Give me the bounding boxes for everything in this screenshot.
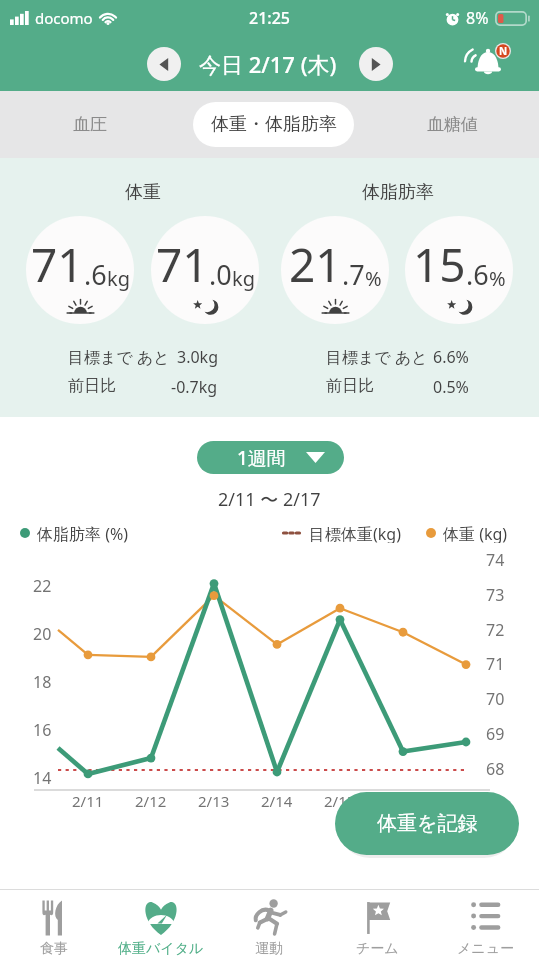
button[interactable]: 体重バイタル — [107, 890, 215, 960]
staticText: 21 — [289, 233, 342, 296]
staticText: 16 — [33, 719, 52, 741]
staticText: .6 — [466, 256, 489, 293]
button[interactable]: 21 — [281, 216, 389, 324]
button[interactable]: 食事 — [0, 890, 107, 960]
staticText: 8% — [466, 7, 489, 29]
staticText: 目標まで あと — [68, 346, 170, 368]
staticText: 2/16 — [387, 791, 419, 811]
staticText: 前日比 — [326, 376, 374, 396]
staticText: 体重 (kg) — [443, 523, 508, 543]
staticText: kg — [232, 265, 255, 292]
staticText: 0.5% — [433, 376, 469, 398]
button[interactable]: チーム — [323, 890, 431, 960]
button[interactable]: 71 — [151, 216, 259, 324]
button[interactable]: 運動 — [215, 890, 323, 960]
staticText: 6.6% — [433, 346, 469, 368]
staticText: 70 — [486, 688, 505, 710]
staticText: 目標まで あと — [326, 346, 428, 368]
staticText: .6 — [84, 256, 107, 293]
staticText: % — [489, 265, 506, 292]
staticText: 73 — [486, 584, 505, 606]
button[interactable]: Next day — [359, 47, 393, 81]
staticText: 血圧 — [73, 114, 107, 135]
staticText: .0 — [209, 256, 232, 293]
staticText: 15 — [413, 233, 466, 296]
staticText: 2/11 〜 2/17 — [218, 487, 321, 512]
button[interactable]: メニュー — [431, 890, 539, 960]
staticText: 運動 — [255, 940, 283, 958]
staticText: 2/17 — [450, 791, 482, 811]
staticText: チーム — [356, 940, 399, 958]
staticText: 21:25 — [249, 7, 290, 29]
button[interactable]: Notifications — [458, 32, 514, 80]
staticText: 体重・体脂肪率 — [211, 113, 337, 136]
staticText: docomo — [35, 8, 93, 28]
staticText: 2/11 — [72, 791, 104, 811]
staticText: 体重 — [125, 181, 161, 204]
staticText: 2/15 — [324, 791, 356, 811]
staticText: メニュー — [457, 940, 514, 958]
staticText: 14 — [33, 767, 52, 789]
staticText: 2/12 — [135, 791, 167, 811]
staticText: 1週間 — [237, 445, 286, 471]
staticText: 71 — [156, 233, 209, 296]
staticText: -0.7kg — [171, 376, 218, 398]
button[interactable]: 1週間 — [197, 441, 344, 474]
staticText: 3.0kg — [177, 346, 218, 368]
staticText: 体重バイタル — [118, 940, 204, 958]
button[interactable]: Previous day — [147, 47, 181, 81]
staticText: 71 — [31, 233, 84, 296]
button[interactable]: 15 — [405, 216, 513, 324]
staticText: 20 — [33, 623, 52, 645]
staticText: 目標体重(kg) — [309, 523, 401, 543]
staticText: 69 — [486, 723, 505, 745]
staticText: 今日 2/17 (木) — [199, 49, 337, 79]
staticText: 体脂肪率 — [362, 181, 434, 204]
staticText: 2/14 — [261, 791, 293, 811]
staticText: 72 — [486, 619, 505, 641]
staticText: % — [365, 265, 382, 292]
button[interactable]: 体重・体脂肪率 — [193, 102, 354, 147]
staticText: kg — [107, 265, 130, 292]
staticText: 22 — [33, 575, 52, 597]
staticText: 68 — [486, 758, 505, 780]
staticText: 前日比 — [68, 376, 116, 396]
staticText: 体脂肪率 (%) — [37, 523, 129, 543]
staticText: 71 — [486, 653, 505, 675]
button[interactable]: 71 — [26, 216, 134, 324]
button[interactable]: 体重を記録 — [335, 792, 519, 855]
staticText: 体重を記録 — [377, 811, 478, 836]
staticText: N — [499, 44, 508, 58]
staticText: 2/13 — [198, 791, 230, 811]
staticText: 血糖値 — [427, 114, 478, 135]
staticText: .7 — [342, 256, 365, 293]
button[interactable]: 血圧 — [30, 91, 150, 158]
staticText: 食事 — [40, 940, 68, 958]
staticText: 18 — [33, 671, 52, 693]
staticText: 74 — [486, 549, 505, 571]
button[interactable]: 血糖値 — [392, 91, 512, 158]
